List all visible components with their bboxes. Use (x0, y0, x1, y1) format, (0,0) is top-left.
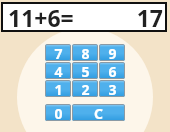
button[interactable]: 9 (99, 44, 125, 61)
staticText: 0 (54, 104, 63, 121)
button[interactable]: C (72, 104, 125, 121)
staticText: 7 (54, 44, 63, 61)
button[interactable]: 4 (45, 62, 71, 79)
button[interactable]: 8 (72, 44, 98, 61)
staticText: 2 (81, 80, 90, 97)
button[interactable]: 3 (99, 80, 125, 97)
staticText: C (94, 104, 103, 121)
button[interactable]: 5 (72, 62, 98, 79)
staticText: 6 (108, 62, 117, 79)
button[interactable]: 6 (99, 62, 125, 79)
staticText: 17 (136, 2, 163, 32)
staticText: 11+6= (8, 2, 74, 32)
staticText: 4 (54, 62, 63, 79)
staticText: 9 (108, 44, 117, 61)
staticText: 5 (81, 62, 90, 79)
staticText: 1 (54, 80, 63, 97)
button[interactable]: 2 (72, 80, 98, 97)
button[interactable]: 11+6= (1, 2, 167, 32)
staticText: 3 (108, 80, 117, 97)
button[interactable]: 1 (45, 80, 71, 97)
button[interactable]: 7 (45, 44, 71, 61)
staticText: 8 (81, 44, 90, 61)
button[interactable]: 0 (45, 104, 71, 121)
